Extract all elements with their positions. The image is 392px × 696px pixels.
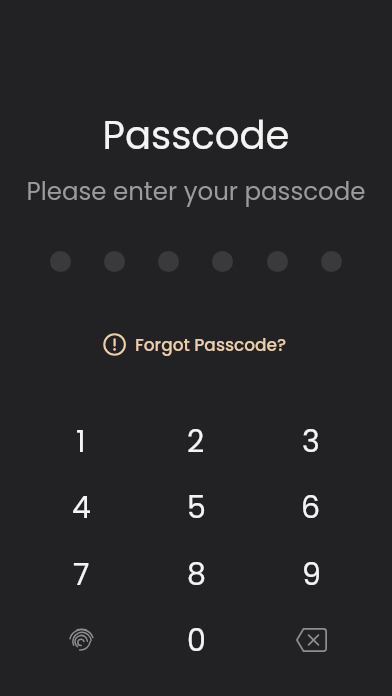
staticText: 6 xyxy=(301,487,321,529)
other: Delete xyxy=(296,628,327,652)
button[interactable]: 4 xyxy=(24,475,138,541)
button[interactable]: 2 xyxy=(139,409,253,475)
staticText: 2 xyxy=(187,421,205,463)
button[interactable]: Unlock with fingerprint xyxy=(24,608,138,674)
staticText: 1 xyxy=(76,421,86,463)
staticText: 9 xyxy=(302,554,321,596)
button[interactable]: 7 xyxy=(24,542,138,608)
staticText: Passcode xyxy=(0,108,392,696)
button[interactable]: 8 xyxy=(139,542,253,608)
staticText: 7 xyxy=(73,554,90,596)
staticText: Please enter your passcode xyxy=(0,174,392,696)
staticText: 5 xyxy=(187,487,206,529)
button[interactable]: 3 xyxy=(254,409,368,475)
staticText: 3 xyxy=(302,421,320,463)
button[interactable]: 6 xyxy=(254,475,368,541)
button[interactable]: 0 xyxy=(139,608,253,674)
staticText: 0 xyxy=(187,620,206,662)
button[interactable]: 9 xyxy=(254,542,368,608)
other: Unlock with fingerprint xyxy=(68,626,95,653)
button[interactable]: Delete xyxy=(254,608,368,674)
staticText: 8 xyxy=(187,554,206,596)
button[interactable]: Forgot Passcode? xyxy=(99,329,293,360)
button[interactable]: 5 xyxy=(139,475,253,541)
staticText: Forgot Passcode? xyxy=(135,333,287,357)
staticText: 4 xyxy=(72,487,91,529)
button[interactable]: 1 xyxy=(24,409,138,475)
